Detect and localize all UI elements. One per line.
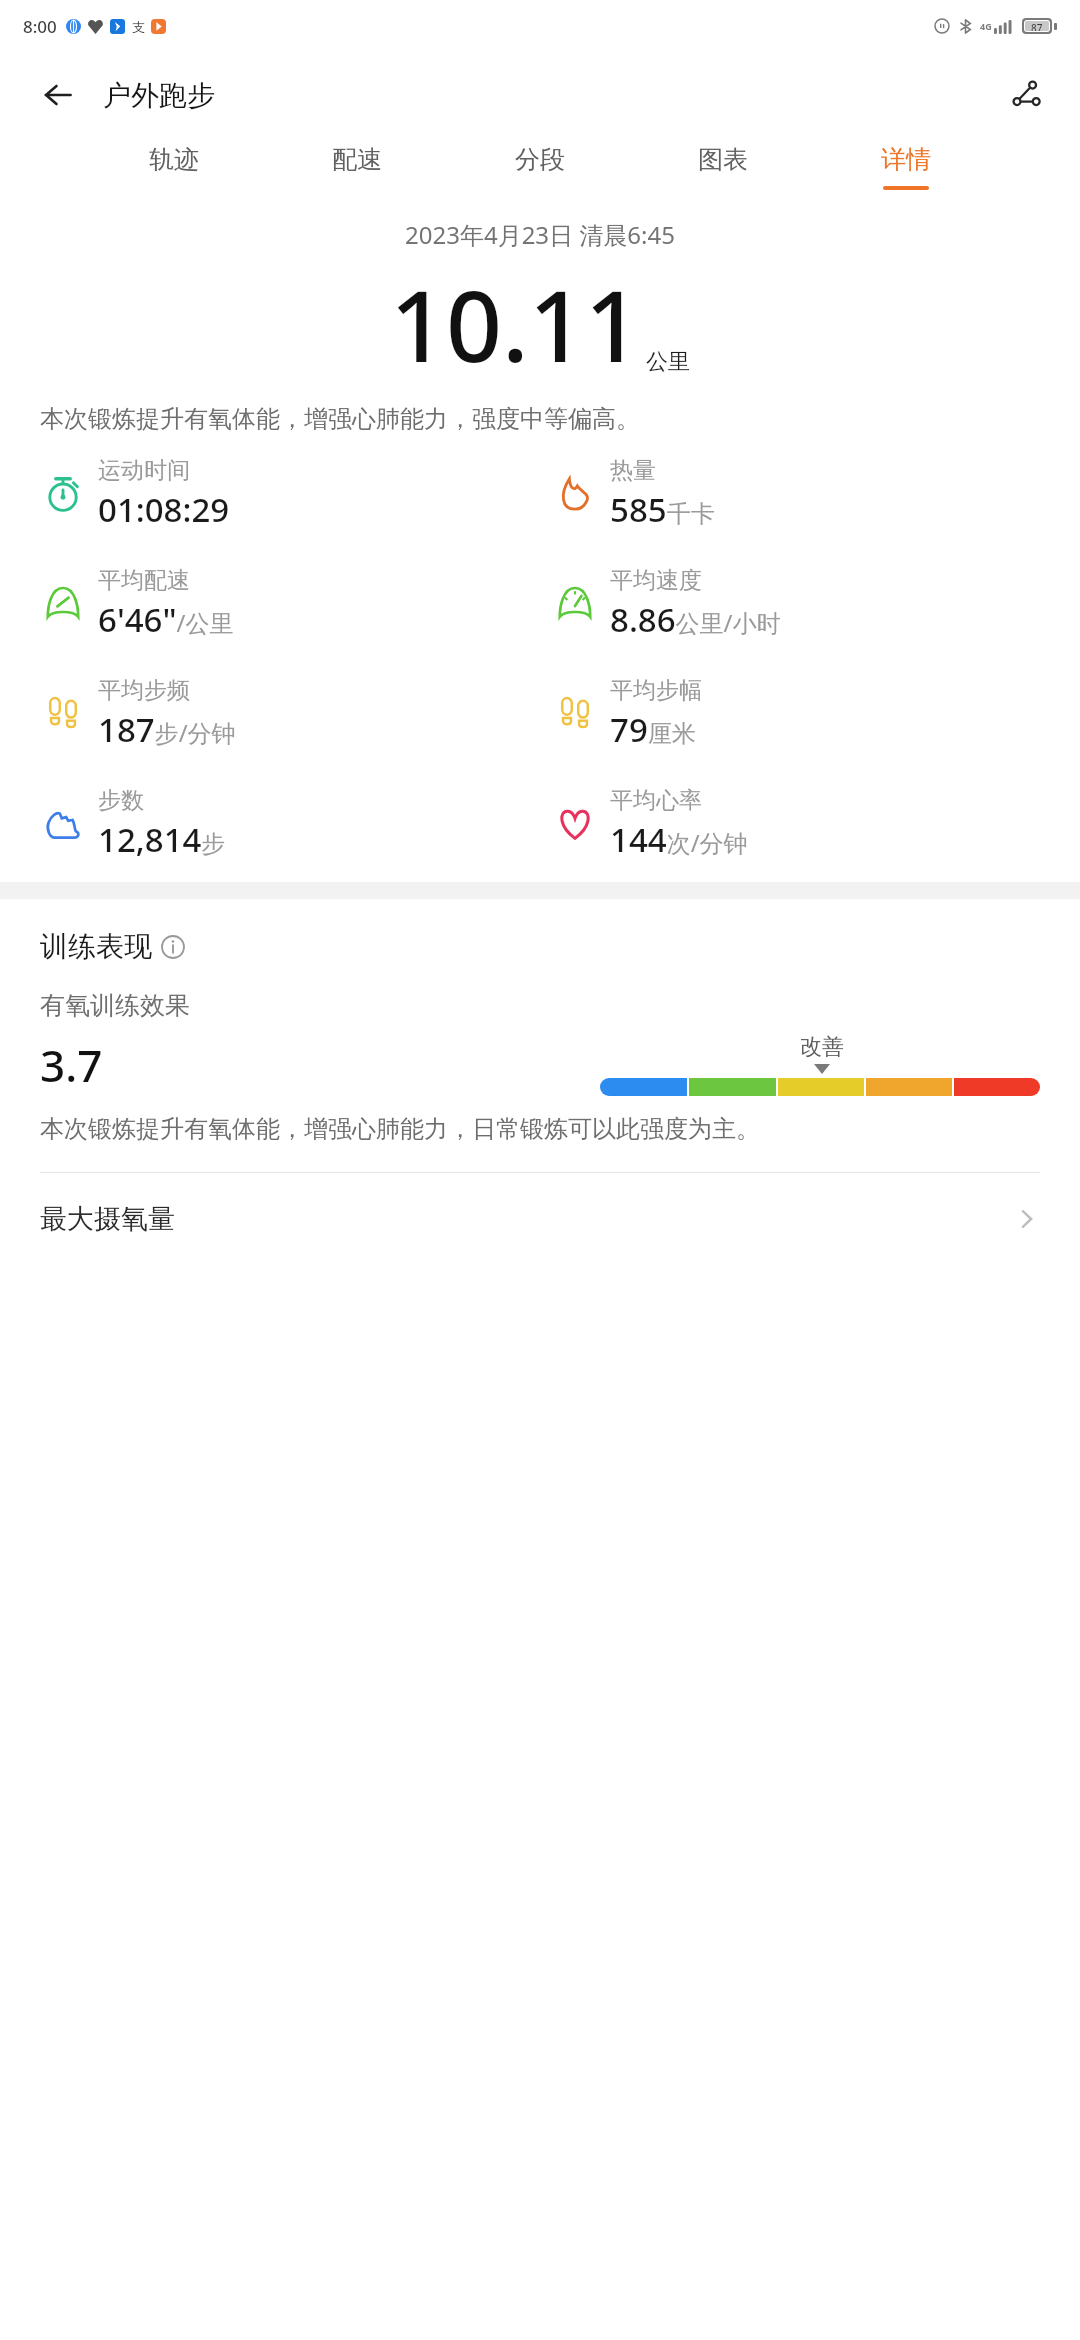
staticText: 平均心率 (610, 786, 702, 815)
staticText: 79厘米 (610, 707, 696, 752)
staticText: 本次锻炼提升有氧体能，增强心肺能力，强度中等偏高。 (40, 404, 1040, 434)
button[interactable]: 详情 (871, 138, 941, 196)
staticText: 有氧训练效果 (40, 990, 190, 1021)
staticText: 12,814步 (98, 817, 226, 862)
staticText: 6'46"/公里 (98, 597, 234, 642)
staticText: 轨迹 (149, 144, 199, 175)
staticText: 图表 (698, 144, 748, 175)
staticText: 8:00 (23, 15, 57, 38)
staticText: 87 (1031, 21, 1043, 31)
button[interactable]: 平均步频 (0, 676, 540, 752)
staticText: 公里 (646, 348, 690, 376)
staticText: 01:08:29 (98, 487, 230, 532)
staticText: 平均速度 (610, 566, 702, 595)
button[interactable]: 步数 (0, 786, 540, 862)
button[interactable]: 轨迹 (139, 138, 209, 196)
other: Info (161, 935, 185, 959)
staticText: 户外跑步 (103, 78, 215, 113)
button[interactable]: 配速 (322, 138, 392, 196)
button[interactable]: 平均心率 (540, 786, 1080, 862)
button[interactable]: 最大摄氧量 (0, 1173, 1080, 1265)
staticText: 热量 (610, 456, 656, 485)
staticText: 3.7 (40, 1035, 103, 1095)
staticText: 平均步幅 (610, 676, 702, 705)
staticText: 4G (980, 20, 992, 32)
staticText: 支 (132, 19, 145, 35)
button[interactable]: 热量 (540, 456, 1080, 532)
staticText: 最大摄氧量 (40, 1202, 175, 1236)
button[interactable]: Back (34, 71, 82, 119)
button[interactable]: 平均配速 (0, 566, 540, 642)
button[interactable]: 训练表现 (40, 929, 185, 964)
staticText: 585千卡 (610, 487, 715, 532)
button[interactable]: 图表 (688, 138, 758, 196)
staticText: 步数 (98, 786, 144, 815)
staticText: 本次锻炼提升有氧体能，增强心肺能力，日常锻炼可以此强度为主。 (40, 1114, 1040, 1144)
button[interactable]: 平均步幅 (540, 676, 1080, 752)
staticText: 配速 (332, 144, 382, 175)
staticText: 144次/分钟 (610, 817, 748, 862)
button[interactable]: 运动时间 (0, 456, 540, 532)
staticText: 8.86公里/小时 (610, 597, 781, 642)
staticText: 10.11 (390, 257, 641, 390)
staticText: 187步/分钟 (98, 707, 236, 752)
staticText: 平均步频 (98, 676, 190, 705)
staticText: 2023年4月23日 清晨6:45 (405, 218, 675, 251)
staticText: 运动时间 (98, 456, 190, 485)
button[interactable]: Share (1002, 71, 1050, 119)
staticText: 详情 (881, 144, 931, 175)
staticText: 改善 (800, 1033, 844, 1061)
staticText: 分段 (515, 144, 565, 175)
staticText: 平均配速 (98, 566, 190, 595)
button[interactable]: 平均速度 (540, 566, 1080, 642)
button[interactable]: 分段 (505, 138, 575, 196)
staticText: 训练表现 (40, 929, 152, 964)
